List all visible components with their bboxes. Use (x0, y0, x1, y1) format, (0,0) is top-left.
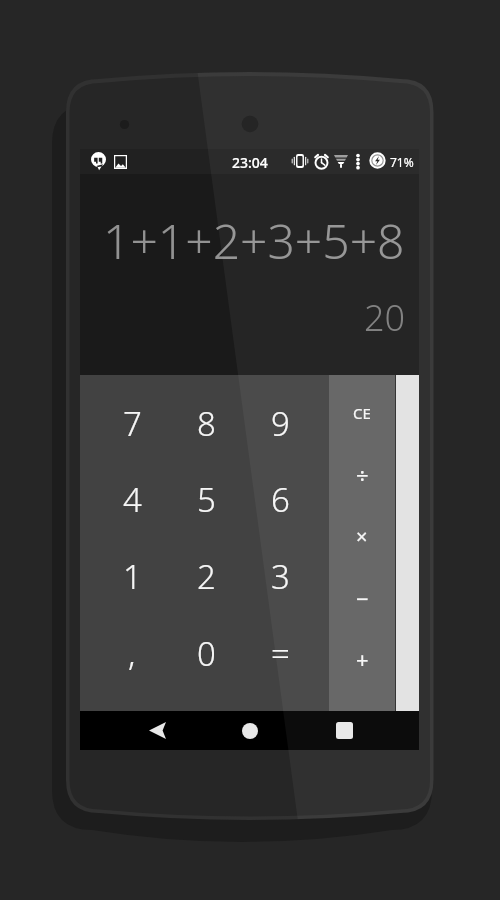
staticText: 4 (123, 477, 142, 522)
staticText: = (271, 631, 290, 676)
button[interactable]: 9 (243, 385, 317, 461)
staticText: ÷ (356, 460, 369, 490)
staticText: 5 (197, 477, 216, 522)
staticText: 1 (123, 554, 142, 599)
staticText: 8 (197, 401, 216, 446)
staticText: 7 (123, 401, 142, 446)
staticText: 2 (197, 554, 216, 599)
button[interactable]: − (329, 567, 395, 628)
button[interactable]: Recent apps (304, 711, 384, 750)
button[interactable]: 7 (95, 385, 169, 461)
staticText: 23:04 (232, 153, 268, 172)
staticText: 0 (197, 631, 216, 676)
button[interactable]: × (329, 506, 395, 567)
button[interactable]: 6 (243, 461, 317, 538)
button[interactable]: 3 (243, 538, 317, 615)
button[interactable]: 8 (169, 385, 243, 461)
button[interactable]: 2 (169, 538, 243, 615)
button[interactable]: , (95, 615, 169, 692)
staticText: 6 (271, 477, 290, 522)
button[interactable]: 5 (169, 461, 243, 538)
button[interactable]: CE (329, 382, 395, 444)
staticText: + (356, 644, 369, 674)
button[interactable]: 0 (169, 615, 243, 692)
staticText: 71% (390, 154, 414, 170)
staticText: 3 (271, 554, 290, 599)
staticText: 9 (271, 401, 290, 446)
staticText: 1+1+2+3+5+8 (103, 208, 405, 273)
button[interactable]: 4 (95, 461, 169, 538)
button[interactable]: + (329, 628, 395, 689)
button[interactable]: 1 (95, 538, 169, 615)
button[interactable]: ÷ (329, 444, 395, 506)
staticText: − (356, 583, 369, 613)
staticText: 20 (364, 293, 406, 342)
staticText: CE (353, 403, 371, 423)
staticText: , (128, 631, 136, 676)
button[interactable]: Back (117, 711, 197, 750)
button[interactable]: Home (210, 711, 290, 750)
button[interactable]: = (243, 615, 317, 692)
staticText: × (356, 523, 368, 550)
